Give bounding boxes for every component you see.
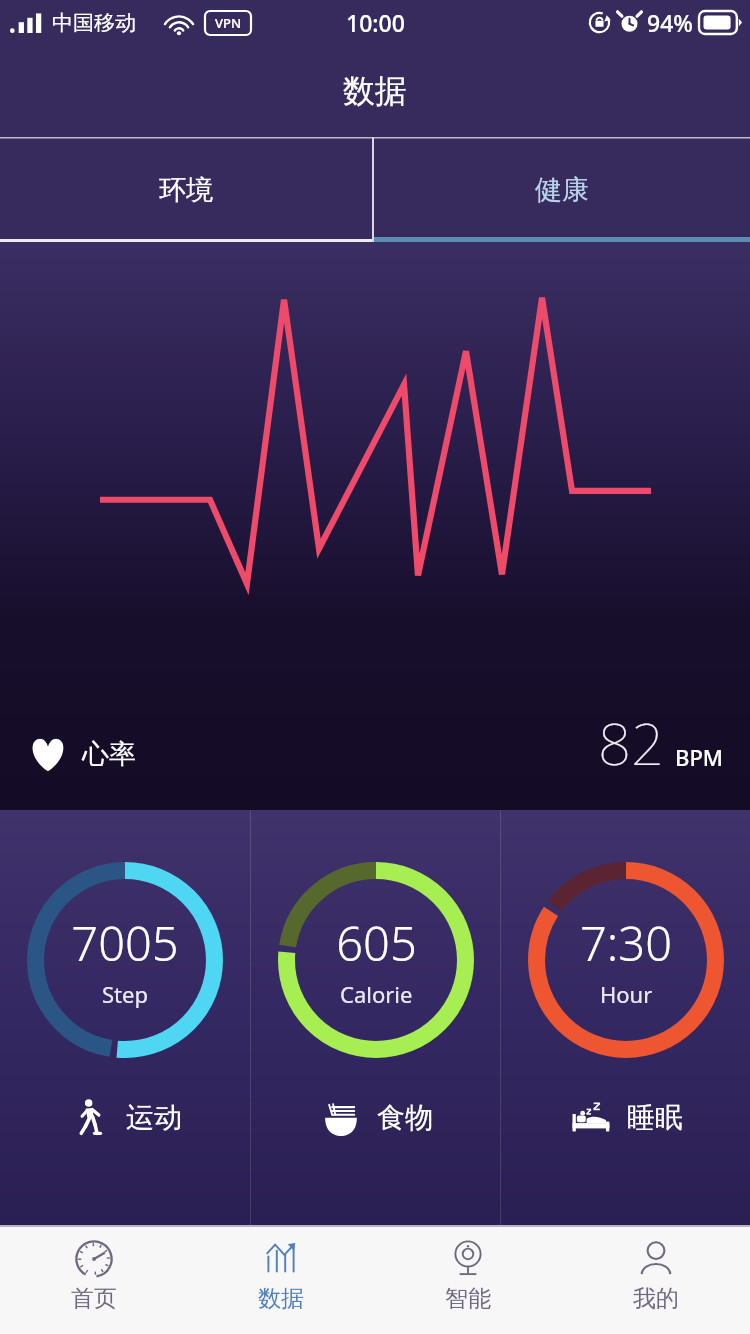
staticText: VPN [215, 14, 242, 32]
staticText: 智能 [445, 1284, 491, 1313]
staticText: BPM [675, 742, 724, 772]
staticText: 82 [598, 703, 665, 782]
button[interactable]: 数据 [187, 1227, 374, 1334]
staticText: Hour [600, 979, 653, 1009]
button[interactable]: 605 [251, 810, 500, 1225]
staticText: 健康 [535, 173, 589, 207]
staticText: 我的 [633, 1284, 679, 1313]
staticText: 数据 [258, 1284, 304, 1313]
staticText: 94% [647, 7, 693, 38]
button[interactable]: 环境 [0, 137, 372, 242]
staticText: Calorie [340, 979, 413, 1009]
staticText: 食物 [377, 1100, 433, 1135]
button[interactable]: 首页 [0, 1227, 187, 1334]
staticText: 7:30 [580, 911, 672, 975]
button[interactable]: 健康 [374, 137, 750, 242]
staticText: 心率 [82, 737, 136, 771]
staticText: 605 [336, 911, 417, 975]
staticText: 睡眠 [627, 1100, 683, 1135]
staticText: 中国移动 [52, 10, 136, 36]
staticText: 数据 [343, 71, 407, 111]
staticText: 运动 [126, 1100, 182, 1135]
staticText: 10:00 [346, 7, 405, 38]
button[interactable]: 我的 [562, 1227, 750, 1334]
staticText: 7005 [71, 911, 179, 975]
button[interactable]: 7005 [0, 810, 250, 1225]
staticText: 首页 [71, 1284, 117, 1313]
button[interactable]: 7:30 [501, 810, 750, 1225]
button[interactable]: 智能 [374, 1227, 562, 1334]
staticText: 环境 [159, 173, 213, 207]
staticText: Step [102, 979, 148, 1009]
